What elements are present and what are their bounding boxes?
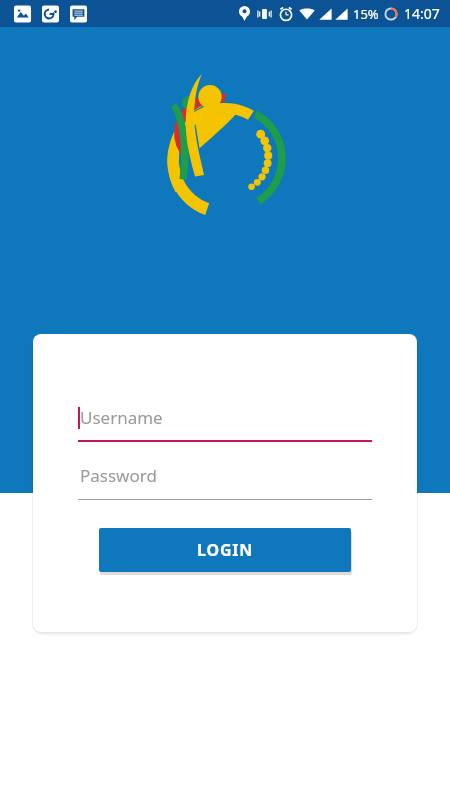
staticText: LOGIN (197, 539, 254, 561)
button[interactable]: LOGIN (99, 528, 351, 572)
button[interactable]: Username (78, 406, 372, 442)
staticText: Password (80, 464, 157, 487)
button[interactable]: Password (78, 464, 372, 500)
staticText: Username (80, 406, 163, 429)
staticText: 15% (353, 5, 379, 23)
staticText: 14:07 (404, 4, 440, 23)
